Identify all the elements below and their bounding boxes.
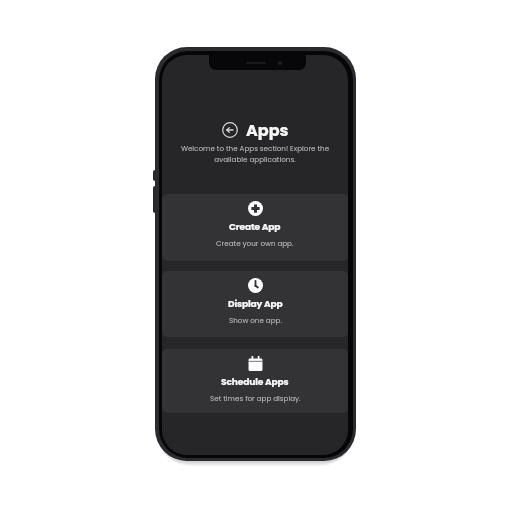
button[interactable]: Create App	[162, 194, 348, 261]
button[interactable]: Back	[221, 121, 239, 139]
staticText: Display App	[228, 297, 283, 310]
staticText: Apps	[246, 119, 289, 141]
button[interactable]: Schedule Apps	[162, 349, 348, 413]
staticText: Show one app.	[229, 315, 282, 325]
staticText: Create your own app.	[216, 238, 294, 248]
staticText: Welcome to the Apps section! Explore the…	[176, 143, 334, 165]
staticText: Schedule Apps	[221, 375, 289, 388]
button[interactable]: Display App	[162, 271, 348, 337]
staticText: Create App	[229, 220, 281, 233]
staticText: Set times for app display.	[210, 393, 301, 403]
